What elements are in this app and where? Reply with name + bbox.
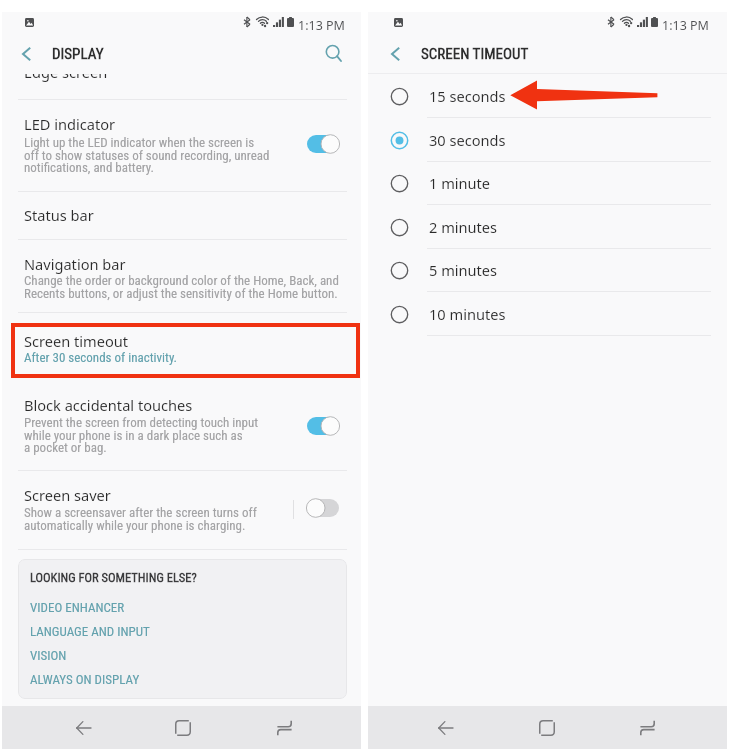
button[interactable]: Home	[165, 710, 201, 746]
staticText: 1:13 PM	[662, 17, 709, 34]
staticText: 10 minutes	[429, 304, 506, 324]
staticText: SCREEN TIMEOUT	[421, 45, 529, 63]
button[interactable]: Navigate up	[380, 42, 412, 74]
staticText: Screen saver	[24, 485, 111, 505]
staticText: 1 minute	[429, 173, 491, 193]
staticText: Show a screensaver after the screen turn…	[24, 505, 257, 533]
button[interactable]: 1 minute	[368, 161, 727, 205]
button[interactable]: VISION	[30, 643, 220, 667]
button[interactable]: Back	[65, 710, 101, 746]
staticText: After 30 seconds of inactivity.	[24, 350, 178, 365]
staticText: 5 minutes	[429, 260, 498, 280]
button[interactable]: Status bar	[2, 203, 361, 227]
staticText: Navigation bar	[24, 254, 126, 274]
staticText: ALWAYS ON DISPLAY	[30, 672, 140, 687]
staticText: DISPLAY	[52, 45, 104, 63]
staticText: Prevent the screen from detecting touch …	[24, 415, 259, 455]
button[interactable]: VIDEO ENHANCER	[30, 595, 220, 619]
staticText: Status bar	[24, 205, 94, 225]
button[interactable]: Navigation bar	[2, 252, 361, 276]
staticText: LOOKING FOR SOMETHING ELSE?	[30, 570, 197, 585]
button[interactable]: Screen timeout	[11, 323, 360, 378]
button[interactable]: Recent apps	[629, 710, 665, 746]
staticText: 30 seconds	[429, 130, 506, 150]
staticText: 2 minutes	[429, 217, 498, 237]
button[interactable]: 15 seconds	[368, 74, 727, 118]
staticText: Change the order or background color of …	[24, 273, 339, 301]
button[interactable]: Block accidental touches	[2, 393, 361, 417]
staticText: VISION	[30, 648, 67, 663]
staticText: 1:13 PM	[298, 17, 345, 34]
button[interactable]: Navigate up	[11, 42, 43, 74]
button[interactable]: LANGUAGE AND INPUT	[30, 619, 220, 643]
button[interactable]: 10 minutes	[368, 292, 727, 336]
button[interactable]: 30 seconds	[368, 118, 727, 162]
button[interactable]: Turn off	[307, 135, 339, 153]
staticText: 15 seconds	[429, 86, 506, 106]
staticText: Light up the LED indicator when the scre…	[24, 135, 270, 175]
button[interactable]: Recent apps	[266, 710, 302, 746]
staticText: Edge screen	[24, 74, 108, 82]
button[interactable]: Back	[427, 710, 463, 746]
staticText: LED indicator	[24, 114, 116, 134]
button[interactable]: LED indicator	[2, 112, 361, 136]
staticText: VIDEO ENHANCER	[30, 600, 125, 615]
staticText: Block accidental touches	[24, 395, 193, 415]
button[interactable]: Search	[316, 42, 348, 74]
staticText: LANGUAGE AND INPUT	[30, 624, 150, 639]
button[interactable]: 5 minutes	[368, 248, 727, 292]
button[interactable]: Turn on	[307, 499, 339, 517]
button[interactable]: 2 minutes	[368, 205, 727, 249]
button[interactable]: Edge screen	[2, 74, 361, 84]
staticText: Screen timeout	[24, 331, 129, 351]
button[interactable]: Screen saver	[2, 483, 361, 507]
button[interactable]: Turn off	[307, 417, 339, 435]
button[interactable]: ALWAYS ON DISPLAY	[30, 667, 220, 691]
button[interactable]: Home	[529, 710, 565, 746]
